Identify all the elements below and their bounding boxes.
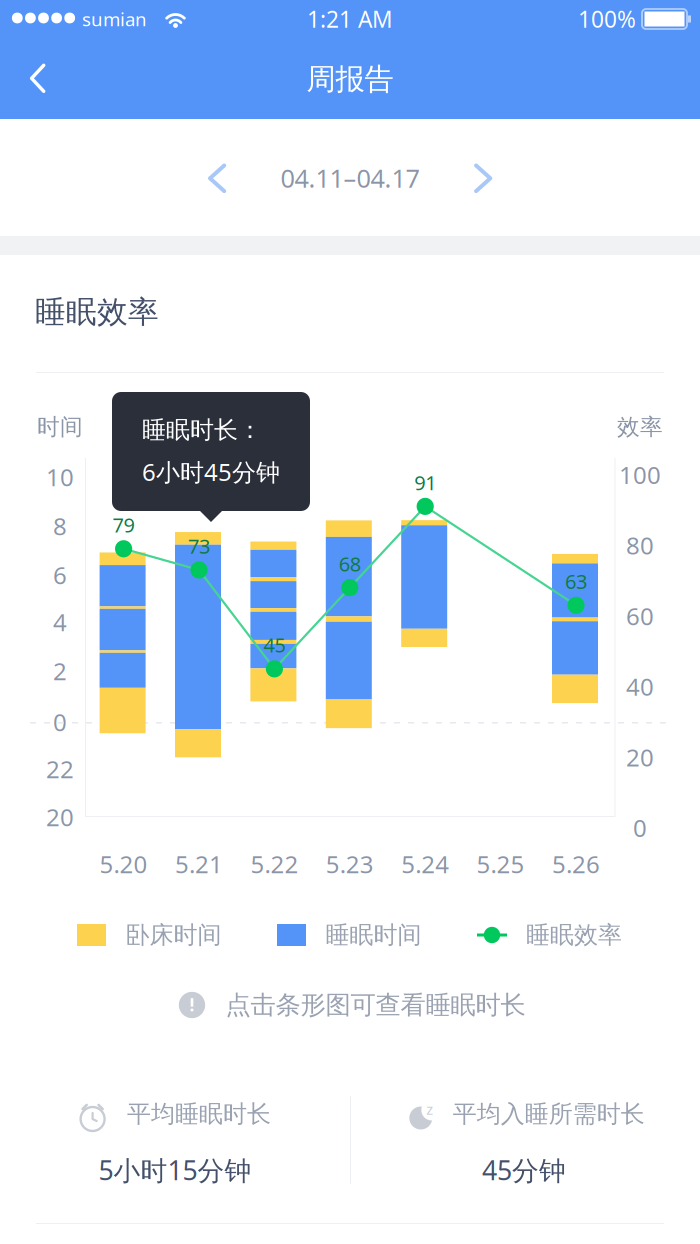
staticText: 79 xyxy=(113,511,135,538)
staticText: 22 xyxy=(46,753,74,785)
staticText: 80 xyxy=(626,529,654,561)
staticText: 5.24 xyxy=(401,848,449,880)
staticText: 睡眠时长： xyxy=(142,415,262,445)
staticText: 睡眠效率 xyxy=(526,920,622,950)
staticText: 平均睡眠时长 xyxy=(127,1099,271,1129)
staticText: 周报告 xyxy=(306,61,393,97)
staticText: 40 xyxy=(626,671,654,702)
staticText: 91 xyxy=(414,469,436,496)
button[interactable]: Previous week xyxy=(191,152,243,204)
staticText: 5.25 xyxy=(477,848,525,880)
staticText: 45 xyxy=(263,632,285,658)
staticText: 4 xyxy=(53,606,67,638)
button[interactable]: Back xyxy=(9,50,65,106)
staticText: 20 xyxy=(46,801,74,833)
staticText: 73 xyxy=(188,533,210,559)
staticText: 6 xyxy=(53,559,67,591)
staticText: 睡眠时间 xyxy=(325,920,421,950)
staticText: 效率 xyxy=(617,413,663,441)
staticText: 时间 xyxy=(37,413,83,441)
staticText: 04.11–04.17 xyxy=(280,161,419,195)
staticText: 5小时15分钟 xyxy=(98,1152,251,1188)
staticText: 45分钟 xyxy=(482,1152,566,1188)
button[interactable]: Next week xyxy=(457,152,509,204)
staticText: 5.23 xyxy=(326,848,374,880)
staticText: 5.20 xyxy=(100,848,148,880)
staticText: 卧床时间 xyxy=(125,920,221,950)
staticText: 63 xyxy=(565,568,587,595)
staticText: 平均入睡所需时长 xyxy=(453,1099,645,1129)
staticText: 100% xyxy=(578,4,636,34)
staticText: 68 xyxy=(339,550,361,577)
staticText: 60 xyxy=(626,600,654,632)
staticText: 睡眠效率 xyxy=(35,293,159,331)
staticText: 2 xyxy=(53,655,67,687)
staticText: 8 xyxy=(53,510,67,542)
staticText: 点击条形图可查看睡眠时长 xyxy=(225,989,525,1020)
staticText: 5.22 xyxy=(250,848,298,880)
staticText: 0 xyxy=(53,706,67,738)
staticText: 20 xyxy=(626,741,654,773)
staticText: 0 xyxy=(633,812,647,844)
staticText: sumian xyxy=(82,7,147,31)
staticText: 6小时45分钟 xyxy=(142,456,280,488)
staticText: 100 xyxy=(619,459,661,491)
staticText: 1:21 AM xyxy=(307,4,393,34)
staticText: 10 xyxy=(46,461,74,493)
staticText: 5.21 xyxy=(175,848,223,880)
staticText: 5.26 xyxy=(552,848,600,880)
staticText: z xyxy=(426,1099,433,1119)
